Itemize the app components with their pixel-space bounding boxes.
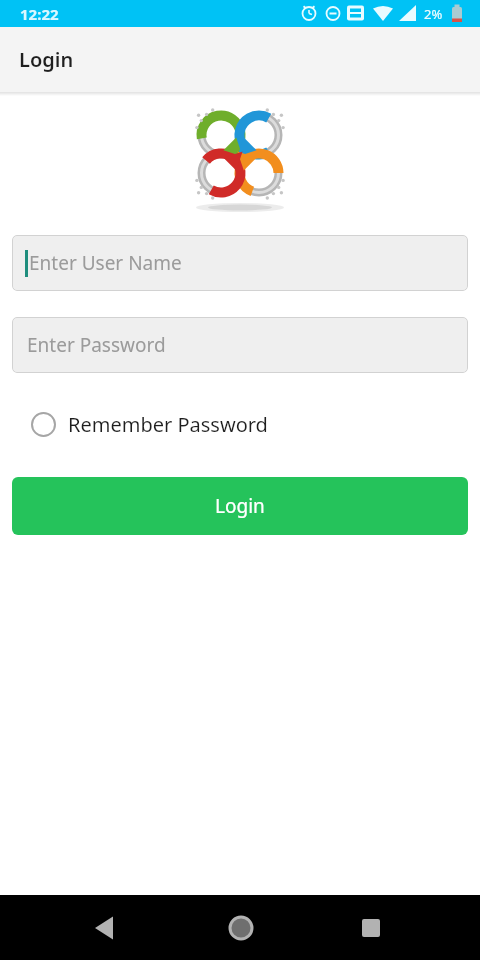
- staticText: Login: [215, 493, 265, 519]
- button[interactable]: [160, 895, 320, 960]
- button[interactable]: Enter User Name: [12, 235, 468, 291]
- button[interactable]: [0, 895, 160, 960]
- button[interactable]: Login: [12, 477, 468, 535]
- staticText: Remember Password: [68, 411, 268, 437]
- button[interactable]: Remember Password: [31, 411, 268, 437]
- staticText: Login: [19, 46, 74, 73]
- staticText: 2%: [424, 5, 443, 23]
- button[interactable]: Enter Password: [12, 317, 468, 373]
- staticText: Enter User Name: [29, 250, 182, 276]
- button[interactable]: [320, 895, 480, 960]
- staticText: 12:22: [20, 4, 59, 24]
- staticText: Enter Password: [27, 332, 166, 358]
